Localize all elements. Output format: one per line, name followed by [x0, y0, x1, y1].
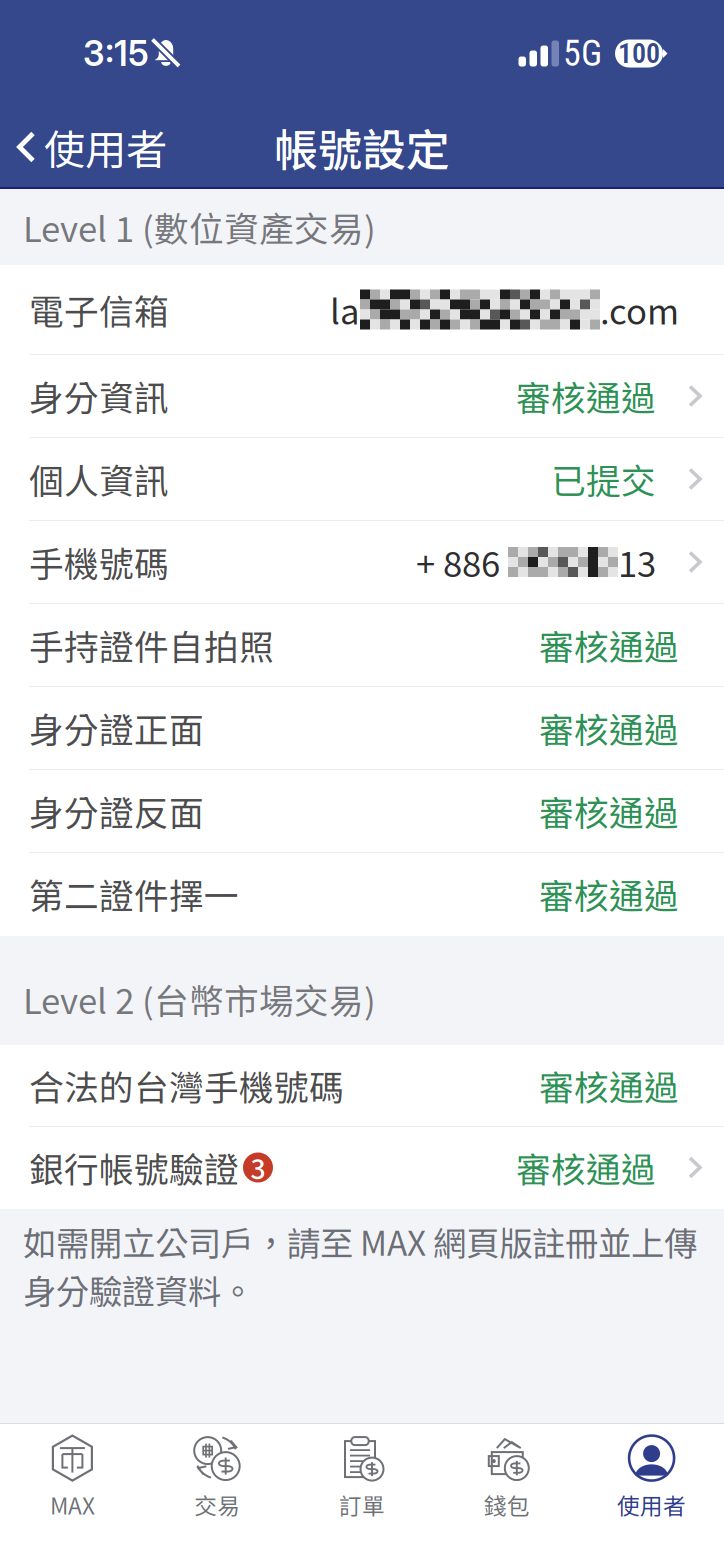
staticText: .com [600, 284, 679, 335]
staticText: 個人資訊 [29, 454, 169, 504]
staticText: 使用者 [44, 117, 167, 177]
button[interactable]: MAX [0, 1424, 145, 1544]
staticText: 100 [618, 37, 660, 70]
staticText: 已提交 [551, 454, 656, 504]
button[interactable]: 交易 [145, 1424, 290, 1544]
staticText: 審核通過 [539, 786, 679, 836]
staticText: 身分證反面 [29, 786, 204, 836]
staticText: 審核通過 [516, 1142, 656, 1193]
staticText: 3:15 [83, 32, 149, 74]
staticText: 使用者 [617, 1488, 686, 1521]
button[interactable]: 使用者 [0, 107, 167, 187]
staticText: 帳號設定 [274, 115, 450, 179]
button[interactable]: 訂單 [290, 1424, 434, 1544]
button[interactable]: 合法的台灣手機號碼 [0, 1045, 724, 1127]
staticText: 錢包 [484, 1488, 530, 1521]
staticText: 審核通過 [539, 620, 679, 670]
button[interactable]: 錢包 [434, 1424, 579, 1544]
button[interactable]: 銀行帳號驗證 [0, 1127, 724, 1209]
staticText: 第二證件擇一 [29, 869, 239, 919]
staticText: 13 [618, 537, 656, 587]
staticText: 如需開立公司戶，請至 MAX 網頁版註冊並上傳身分驗證資料。 [23, 1217, 697, 1313]
staticText: + 886 [416, 537, 508, 587]
staticText: MAX [50, 1488, 95, 1521]
staticText: 交易 [194, 1488, 240, 1521]
staticText: 身分證正面 [29, 703, 204, 753]
button[interactable]: 身分資訊 [0, 355, 724, 438]
staticText: 手機號碼 [29, 537, 169, 587]
staticText: 電子信箱 [29, 284, 169, 335]
button[interactable]: 個人資訊 [0, 438, 724, 521]
button[interactable]: 使用者 [579, 1424, 724, 1544]
staticText: 審核通過 [516, 371, 656, 421]
staticText: 審核通過 [539, 703, 679, 753]
staticText: 3 [250, 1148, 265, 1187]
button[interactable]: 電子信箱 [0, 265, 724, 355]
staticText: Level 1 (數位資產交易) [23, 202, 376, 252]
staticText: 訂單 [339, 1488, 385, 1521]
staticText: 手持證件自拍照 [29, 620, 274, 670]
button[interactable]: 手持證件自拍照 [0, 604, 724, 687]
staticText: la [330, 284, 360, 335]
staticText: 身分資訊 [29, 371, 169, 421]
staticText: 審核通過 [539, 1060, 679, 1111]
staticText: 銀行帳號驗證 [29, 1142, 239, 1193]
staticText: Level 2 (台幣市場交易) [23, 974, 376, 1024]
staticText: 5G [563, 32, 602, 75]
button[interactable]: 手機號碼 [0, 521, 724, 604]
button[interactable]: 身分證反面 [0, 770, 724, 853]
button[interactable]: 第二證件擇一 [0, 853, 724, 936]
staticText: 審核通過 [539, 869, 679, 919]
button[interactable]: 身分證正面 [0, 687, 724, 770]
staticText: 合法的台灣手機號碼 [29, 1060, 344, 1111]
